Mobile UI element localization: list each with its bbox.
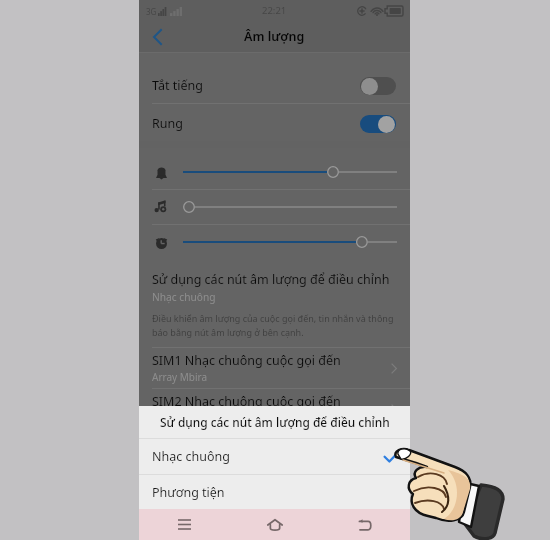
staticText: Array Mbira [152, 411, 208, 425]
staticText: Phương tiện [152, 484, 225, 501]
button[interactable]: Rung [139, 105, 410, 142]
staticText: SIM2 Nhạc chuông cuộc gọi đến [152, 393, 341, 410]
staticText: Sử dụng các nút âm lượng để điều chỉnh [160, 414, 390, 430]
staticText: SIM1 Nhạc chuông cuộc gọi đến [152, 352, 341, 369]
staticText: Nhạc chuông [152, 448, 230, 465]
button[interactable]: Tắt tiếng [139, 67, 410, 104]
button[interactable]: Phương tiện [139, 475, 410, 509]
button[interactable]: Sử dụng các nút âm lượng để điều chỉnh [139, 271, 410, 339]
staticText: Array Mbira [152, 370, 208, 384]
staticText: 3G [146, 6, 157, 17]
staticText: Nhạc chuông [152, 290, 216, 304]
button[interactable]: Home [230, 509, 320, 540]
staticText: Điều khiển âm lượng của cuộc gọi đến, ti… [152, 312, 406, 339]
staticText: 22:21 [262, 4, 287, 17]
button[interactable]: Back [320, 509, 410, 540]
button[interactable]: Back [143, 21, 171, 52]
staticText: Rung [152, 115, 183, 132]
staticText: Tắt tiếng [152, 77, 203, 94]
button[interactable]: SIM2 Nhạc chuông cuộc gọi đến [139, 389, 410, 429]
button[interactable]: Nhạc chuông [139, 439, 410, 474]
staticText: Sử dụng các nút âm lượng để điều chỉnh [152, 271, 390, 288]
staticText: Âm lượng [244, 28, 305, 45]
button[interactable]: Recent apps [139, 509, 230, 540]
button[interactable]: SIM1 Nhạc chuông cuộc gọi đến [139, 348, 410, 388]
